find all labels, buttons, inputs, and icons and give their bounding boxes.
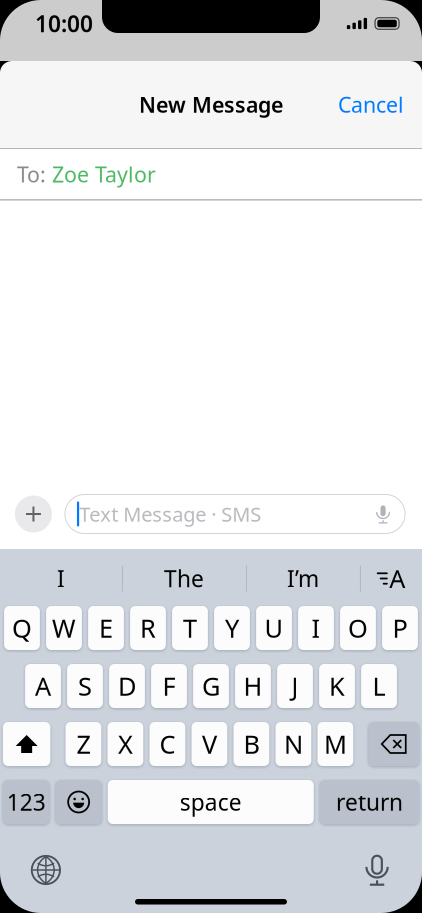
button[interactable]: B [233,722,269,766]
button[interactable]: Q [4,606,40,650]
button[interactable]: F [151,664,187,708]
button[interactable]: X [107,722,143,766]
staticText: 123 [7,787,46,817]
button[interactable]: U [256,606,292,650]
button[interactable]: I [0,556,122,600]
staticText: J [291,669,298,703]
button[interactable]: The [122,556,246,600]
staticText: Text Message · SMS [79,501,261,527]
staticText: F [162,669,175,703]
button[interactable]: P [382,606,418,650]
button[interactable]: Delete [368,722,419,766]
button[interactable]: Shift [3,722,50,766]
button[interactable]: S [67,664,103,708]
button[interactable]: D [109,664,145,708]
button[interactable]: Add attachment [15,495,52,532]
staticText: B [243,727,259,761]
staticText: I [311,611,320,645]
staticText: G [202,669,220,703]
button[interactable]: Next keyboard [32,856,60,884]
button[interactable]: Emoji [55,780,102,824]
button[interactable]: L [361,664,397,708]
staticText: X [118,727,133,761]
staticText: D [118,669,136,703]
staticText: Zoe Taylor [46,160,156,188]
button[interactable]: space [108,780,314,824]
staticText: W [52,611,76,645]
staticText: space [180,787,242,817]
button[interactable]: H [235,664,271,708]
button[interactable]: O [340,606,376,650]
button[interactable]: W [46,606,82,650]
button[interactable]: N [275,722,311,766]
staticText: R [140,611,156,645]
staticText: 10:00 [35,8,93,38]
staticText: Cancel [338,90,404,119]
staticText: I’m [287,563,319,593]
staticText: T [183,611,197,645]
button[interactable]: A [25,664,61,708]
staticText: L [372,669,385,703]
button[interactable]: I [298,606,334,650]
staticText: E [99,611,113,645]
button[interactable]: G [193,664,229,708]
staticText: S [78,669,92,703]
button[interactable]: Z [65,722,101,766]
button[interactable]: M [317,722,353,766]
staticText: Q [12,611,32,645]
staticText: K [329,669,345,703]
staticText: To: [17,160,46,188]
button[interactable]: return [320,780,419,824]
staticText: return [336,787,403,817]
staticText: Y [225,611,239,645]
staticText: O [348,611,368,645]
staticText: New Message [139,90,283,119]
button[interactable]: Dictation [362,855,392,885]
staticText: C [159,727,175,761]
button[interactable]: To: [0,149,422,200]
button[interactable]: Cancel [320,78,422,131]
button[interactable]: V [191,722,227,766]
button[interactable]: C [149,722,185,766]
button[interactable]: E [88,606,124,650]
button[interactable]: T [172,606,208,650]
staticText: The [164,563,204,593]
staticText: H [243,669,262,703]
staticText: Z [76,727,90,761]
button[interactable]: J [277,664,313,708]
button[interactable]: I’m [246,556,360,600]
button[interactable]: Y [214,606,250,650]
staticText: N [284,727,303,761]
button[interactable]: K [319,664,355,708]
staticText: I [57,563,65,593]
button[interactable]: 123 [3,780,49,824]
staticText: A [35,669,51,703]
staticText: U [264,611,283,645]
staticText: P [392,611,407,645]
staticText: A [389,562,405,595]
button[interactable]: Text formatting [360,556,422,600]
staticText: V [202,727,217,761]
button[interactable]: R [130,606,166,650]
staticText: M [324,727,347,761]
